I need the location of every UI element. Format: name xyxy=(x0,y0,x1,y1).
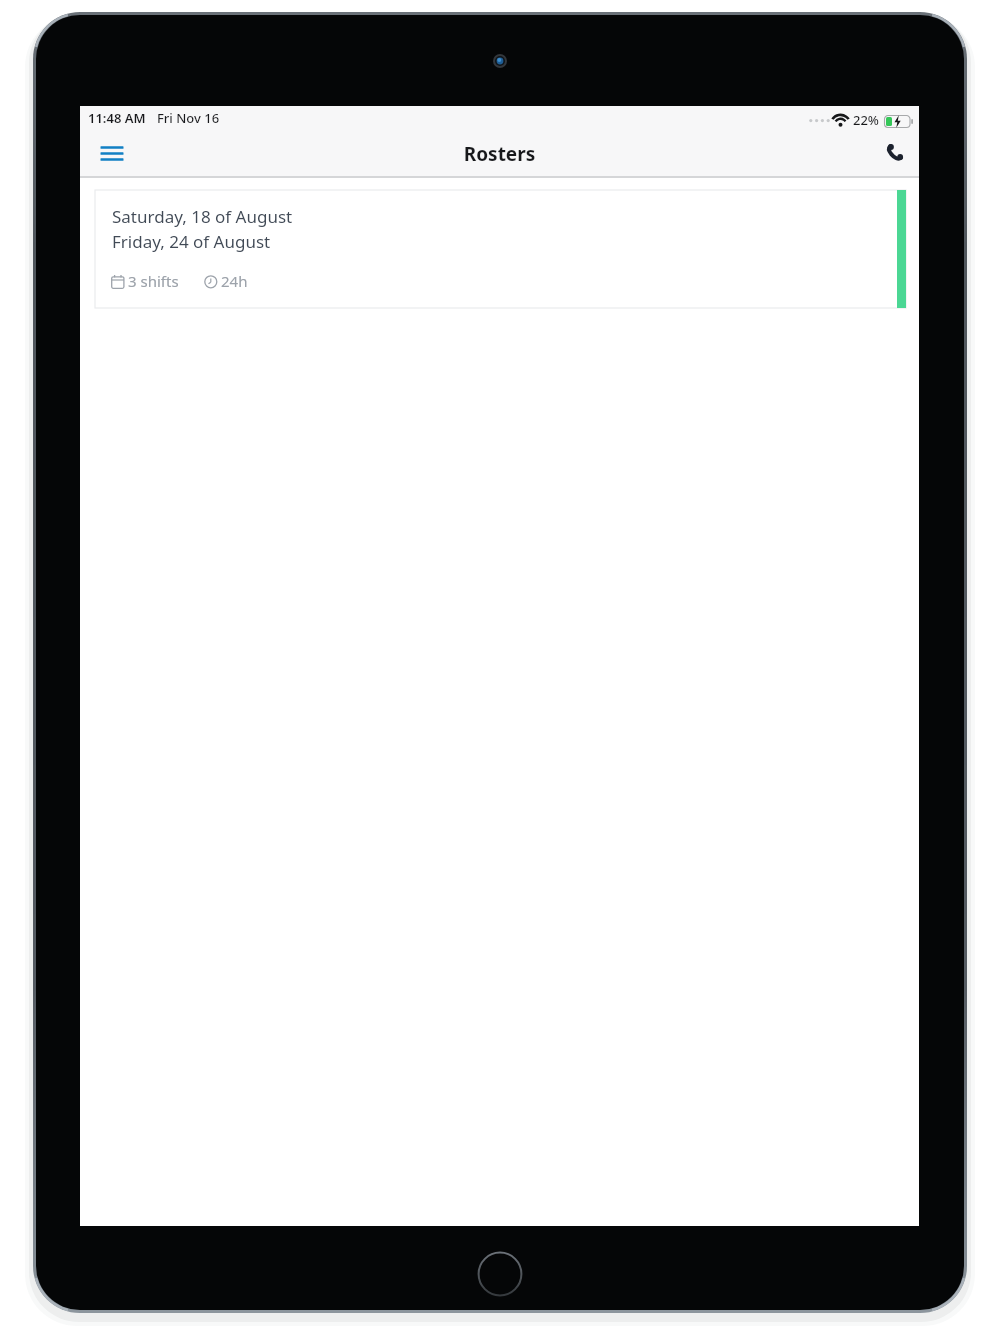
staticText: 24h xyxy=(221,271,248,291)
staticText: 3 shifts xyxy=(128,271,179,291)
staticText: Friday, 24 of August xyxy=(112,230,271,253)
staticText: Rosters xyxy=(80,141,919,167)
staticText: 22% xyxy=(853,111,879,129)
staticText: Saturday, 18 of August xyxy=(112,205,293,228)
staticText: 11:48 AM xyxy=(88,109,146,127)
button[interactable] xyxy=(877,135,913,169)
button[interactable] xyxy=(92,137,132,169)
button[interactable]: Saturday, 18 of August xyxy=(95,190,906,308)
staticText: Fri Nov 16 xyxy=(157,109,220,127)
